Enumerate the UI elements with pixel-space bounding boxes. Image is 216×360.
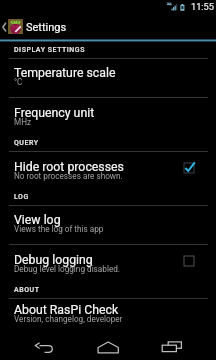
staticText: Views the log of this app <box>14 224 104 234</box>
button[interactable]: Hide root processes <box>0 152 216 191</box>
button[interactable]: Recent apps <box>150 330 194 360</box>
button[interactable]: Back <box>22 330 66 360</box>
button[interactable]: Frequency unit <box>0 98 216 137</box>
staticText: Settings <box>26 21 67 34</box>
staticText: MHz <box>14 117 32 127</box>
staticText: Temperature scale <box>14 66 116 80</box>
staticText: View log <box>14 213 61 227</box>
staticText: Version, changelog, developer <box>14 314 123 324</box>
staticText: QUERY <box>14 139 39 147</box>
staticText: No root processes are shown. <box>14 171 123 181</box>
staticText: °C <box>14 77 23 87</box>
button[interactable]: Home <box>86 330 130 360</box>
button[interactable]: Debug logging <box>0 245 216 284</box>
staticText: About RasPi Check <box>14 303 119 317</box>
staticText: ABOUT <box>14 286 40 294</box>
staticText: 11:55 <box>191 1 214 12</box>
staticText: Debug level logging disabled. <box>14 264 121 274</box>
staticText: Frequency unit <box>14 106 95 120</box>
staticText: DISPLAY SETTINGS <box>14 46 85 54</box>
button[interactable]: About RasPi Check <box>0 299 216 330</box>
staticText: Hide root processes <box>14 160 124 174</box>
button[interactable]: Navigate up <box>0 13 23 39</box>
button[interactable]: Temperature scale <box>0 59 216 97</box>
staticText: Debug logging <box>14 253 93 267</box>
button[interactable]: View log <box>0 206 216 244</box>
staticText: LOG <box>14 193 29 201</box>
